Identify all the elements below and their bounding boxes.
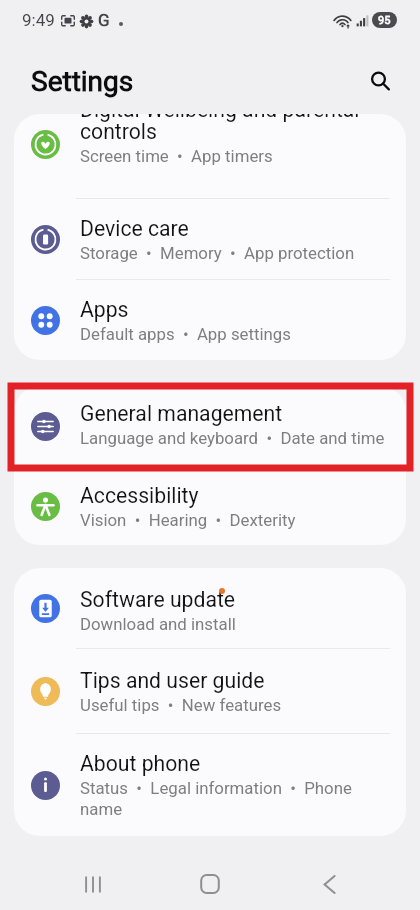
staticText: Storage • Memory • App protection <box>80 243 355 263</box>
staticText: Useful tips • New features <box>80 695 282 715</box>
staticText: Download and install <box>80 614 236 634</box>
button[interactable]: Back <box>301 848 357 904</box>
staticText: Screen time • App timers <box>80 146 273 166</box>
staticText: Software update <box>80 587 236 612</box>
staticText: Apps <box>80 297 129 322</box>
button[interactable]: About phone <box>14 734 406 836</box>
button[interactable]: Search <box>357 58 399 100</box>
staticText: Device care <box>80 216 189 241</box>
staticText: Accessibility <box>80 483 199 508</box>
staticText: 9:49 <box>22 10 55 30</box>
staticText: Digital Wellbeing and parental controls <box>80 114 389 144</box>
staticText: G <box>98 10 110 30</box>
button[interactable]: Recents <box>65 848 121 904</box>
staticText: Language and keyboard • Date and time <box>80 428 385 448</box>
button[interactable]: Accessibility <box>14 467 406 545</box>
staticText: Settings <box>31 65 134 98</box>
button[interactable]: Software update <box>14 568 406 649</box>
button[interactable]: Apps <box>14 280 406 360</box>
button[interactable]: Digital Wellbeing and parental controls <box>14 114 406 199</box>
staticText: General management <box>80 401 283 426</box>
staticText: Default apps • App settings <box>80 324 291 344</box>
staticText: Tips and user guide <box>80 668 265 693</box>
button[interactable]: General management <box>14 386 406 467</box>
button[interactable]: Device care <box>14 199 406 280</box>
staticText: 95 <box>378 14 391 27</box>
button[interactable]: Home <box>182 848 238 904</box>
staticText: About phone <box>80 751 201 776</box>
staticText: Status • Legal information • Phone name <box>80 778 389 819</box>
button[interactable]: Tips and user guide <box>14 649 406 734</box>
staticText: Vision • Hearing • Dexterity <box>80 510 296 530</box>
